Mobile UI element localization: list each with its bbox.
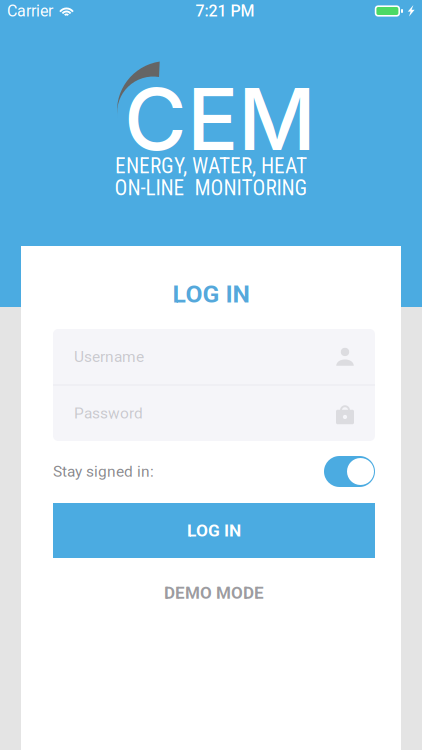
staticText: Username bbox=[74, 348, 144, 366]
staticText: CEM bbox=[124, 67, 316, 171]
staticText: ON-LINE MONITORING bbox=[114, 175, 307, 200]
staticText: DEMO MODE bbox=[164, 583, 264, 603]
button[interactable]: DEMO MODE bbox=[53, 579, 375, 607]
staticText: Stay signed in: bbox=[53, 462, 154, 480]
staticText: Carrier bbox=[7, 2, 53, 20]
staticText: LOG IN bbox=[172, 279, 249, 308]
staticText: ENERGY, WATER, HEAT bbox=[115, 153, 307, 178]
staticText: Password bbox=[74, 404, 143, 422]
button[interactable]: LOG IN bbox=[53, 503, 375, 558]
staticText: 7:21 PM bbox=[195, 2, 254, 20]
button[interactable]: Stay signed in bbox=[324, 456, 375, 487]
staticText: LOG IN bbox=[187, 520, 241, 541]
